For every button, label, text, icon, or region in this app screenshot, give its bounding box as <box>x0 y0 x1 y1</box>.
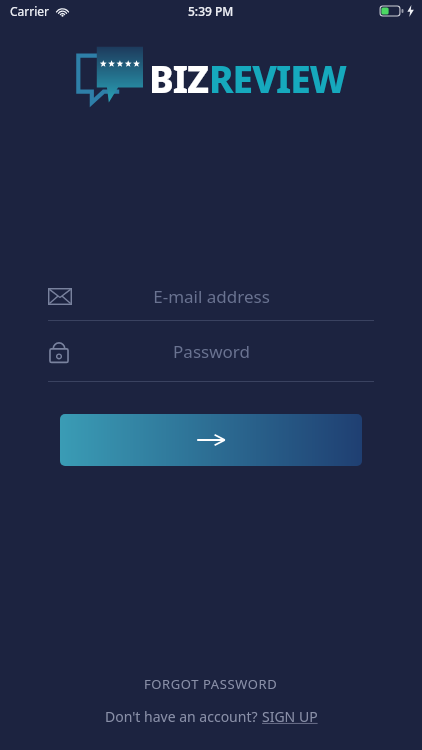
staticText: Don't have an account? <box>105 707 262 726</box>
button[interactable]: Don't have an account? <box>93 705 330 728</box>
staticText: Password <box>173 340 250 363</box>
staticText: Carrier <box>10 3 50 19</box>
staticText: E-mail address <box>153 285 270 308</box>
staticText: SIGN UP <box>262 707 318 726</box>
staticText: BIZ <box>149 53 209 103</box>
button[interactable]: FORGOT PASSWORD <box>132 671 290 697</box>
button[interactable]: E-mail address <box>48 272 374 320</box>
button[interactable]: Sign in <box>60 414 362 466</box>
button[interactable]: Password <box>48 321 374 381</box>
staticText: 5:39 PM <box>188 3 234 19</box>
staticText: FORGOT PASSWORD <box>144 675 278 693</box>
staticText: REVIEW <box>209 53 346 103</box>
